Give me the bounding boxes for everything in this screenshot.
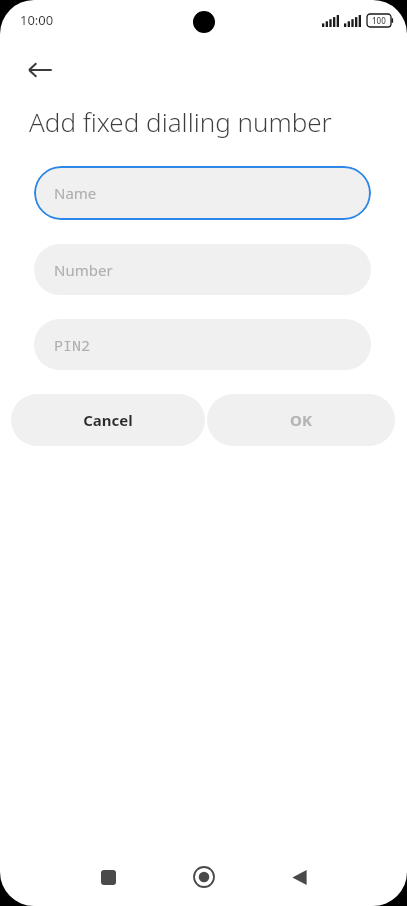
button[interactable]: Number bbox=[34, 244, 371, 295]
button[interactable]: Home bbox=[182, 855, 226, 899]
button[interactable]: Cancel bbox=[11, 394, 205, 446]
staticText: Cancel bbox=[83, 410, 133, 430]
button[interactable]: OK bbox=[207, 394, 395, 446]
button[interactable]: Name bbox=[34, 166, 371, 220]
staticText: Add fixed dialling number bbox=[29, 104, 332, 139]
button[interactable]: Back bbox=[277, 855, 321, 899]
staticText: 10:00 bbox=[20, 11, 54, 29]
staticText: Number bbox=[54, 260, 113, 280]
staticText: OK bbox=[290, 410, 312, 430]
staticText: Name bbox=[54, 183, 97, 203]
button[interactable]: Recent apps bbox=[86, 855, 130, 899]
staticText: 100 bbox=[372, 15, 386, 26]
staticText: PIN2 bbox=[54, 335, 91, 355]
button[interactable]: PIN2 bbox=[34, 319, 371, 370]
button[interactable]: Back bbox=[18, 48, 62, 92]
